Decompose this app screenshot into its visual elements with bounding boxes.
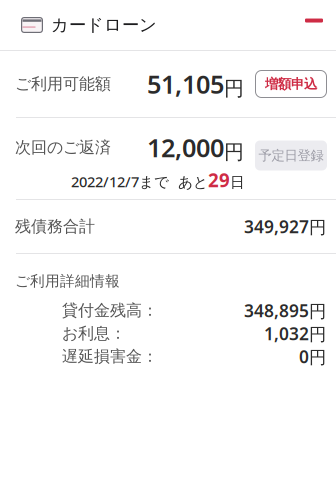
- staticText: 遅延損害金：: [62, 347, 158, 366]
- staticText: 円: [309, 324, 326, 345]
- staticText: 増額申込: [265, 76, 317, 92]
- staticText: 残債務合計: [15, 217, 95, 236]
- staticText: あと: [178, 173, 208, 191]
- staticText: 12,000: [147, 131, 224, 164]
- staticText: ご利用可能額: [15, 74, 111, 94]
- staticText: 2022/12/7まで: [71, 172, 169, 191]
- staticText: 51,105: [147, 67, 224, 101]
- staticText: 日: [230, 173, 245, 191]
- button[interactable]: カードローン: [0, 0, 167, 50]
- staticText: 0: [299, 345, 309, 368]
- staticText: 349,927: [244, 215, 309, 238]
- staticText: 1,032: [264, 322, 309, 345]
- staticText: カードローン: [51, 14, 157, 36]
- staticText: 円: [309, 217, 326, 238]
- staticText: 29: [208, 168, 230, 192]
- staticText: 円: [309, 347, 326, 368]
- staticText: 円: [224, 76, 244, 101]
- staticText: 348,895: [244, 299, 309, 322]
- staticText: お利息：: [62, 324, 126, 343]
- staticText: 貸付金残高：: [62, 301, 158, 320]
- staticText: ご利用詳細情報: [15, 272, 120, 290]
- staticText: 次回のご返済: [15, 138, 111, 157]
- button[interactable]: 増額申込: [255, 70, 327, 98]
- staticText: 円: [224, 140, 244, 164]
- button[interactable]: 予定日登録: [255, 124, 327, 170]
- staticText: 円: [309, 301, 326, 322]
- staticText: 予定日登録: [258, 147, 323, 164]
- button[interactable]: 閉じる: [292, 4, 336, 46]
